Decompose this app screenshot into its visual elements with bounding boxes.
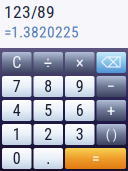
staticText: ÷ [44, 52, 53, 73]
staticText: 6 [76, 101, 84, 120]
staticText: 4 [13, 101, 21, 120]
staticText: 5 [44, 101, 52, 120]
button[interactable]: 2 [33, 124, 63, 145]
staticText: 8 [44, 77, 52, 96]
staticText: =1.3820225 [4, 23, 79, 41]
button[interactable]: 4 [2, 100, 31, 121]
button[interactable]: 6 [65, 100, 94, 121]
staticText: + [107, 100, 116, 121]
staticText: 123/89 [4, 2, 55, 22]
staticText: ( ) [106, 127, 117, 142]
button[interactable]: 8 [33, 76, 63, 97]
button[interactable]: ( ) [96, 124, 126, 145]
staticText: ⌫ [101, 54, 122, 71]
staticText: − [107, 76, 116, 97]
staticText: 0 [13, 149, 21, 168]
button[interactable]: C [2, 52, 31, 73]
button[interactable]: + [96, 100, 126, 121]
button[interactable]: = [65, 148, 126, 169]
staticText: 2 [44, 125, 52, 144]
button[interactable]: 3 [65, 124, 94, 145]
staticText: = [91, 148, 99, 169]
staticText: . [46, 149, 50, 168]
staticText: × [76, 52, 84, 73]
button[interactable]: 9 [65, 76, 94, 97]
staticText: 7 [13, 77, 21, 96]
button[interactable]: 7 [2, 76, 31, 97]
staticText: 1 [13, 125, 21, 144]
button[interactable]: × [65, 52, 94, 73]
button[interactable]: . [33, 148, 63, 169]
staticText: C [12, 53, 21, 72]
button[interactable]: ÷ [33, 52, 63, 73]
staticText: 9 [76, 77, 84, 96]
button[interactable]: 0 [2, 148, 31, 169]
staticText: 3 [76, 125, 84, 144]
button[interactable]: 5 [33, 100, 63, 121]
button[interactable]: − [96, 76, 126, 97]
button[interactable]: Delete [96, 52, 126, 73]
button[interactable]: 1 [2, 124, 31, 145]
